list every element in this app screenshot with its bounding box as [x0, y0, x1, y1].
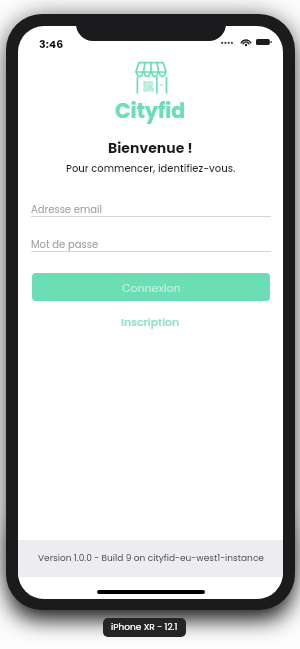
staticText: Version 1.0.0 - Build 9 on cityfid-eu-we…	[38, 552, 264, 565]
staticText: Cityfid	[115, 96, 186, 125]
button[interactable]: Connexion	[32, 273, 270, 301]
staticText: Pour commencer, identifiez-vous.	[66, 161, 236, 175]
button[interactable]: Inscription	[113, 311, 188, 332]
staticText: iPhone XR - 12.1	[111, 621, 178, 634]
staticText: Inscription	[121, 314, 180, 329]
staticText: Bienvenue !	[108, 138, 193, 158]
staticText: Mot de passe	[31, 237, 99, 251]
staticText: Connexion	[122, 280, 181, 295]
staticText: Adresse email	[31, 202, 102, 216]
staticText: 3:46	[39, 36, 64, 51]
